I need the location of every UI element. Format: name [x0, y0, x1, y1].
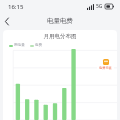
- staticText: 电量电费: [47, 17, 73, 25]
- staticText: 用电量: [14, 43, 25, 48]
- staticText: 电费: [35, 43, 43, 48]
- button[interactable]: 电费充值: [97, 58, 114, 71]
- staticText: 月用电分布图: [3, 33, 117, 40]
- staticText: 电费充值: [99, 66, 112, 70]
- staticText: 5G: [96, 3, 103, 10]
- staticText: 16:15: [8, 3, 24, 11]
- button[interactable]: Back: [0, 14, 14, 28]
